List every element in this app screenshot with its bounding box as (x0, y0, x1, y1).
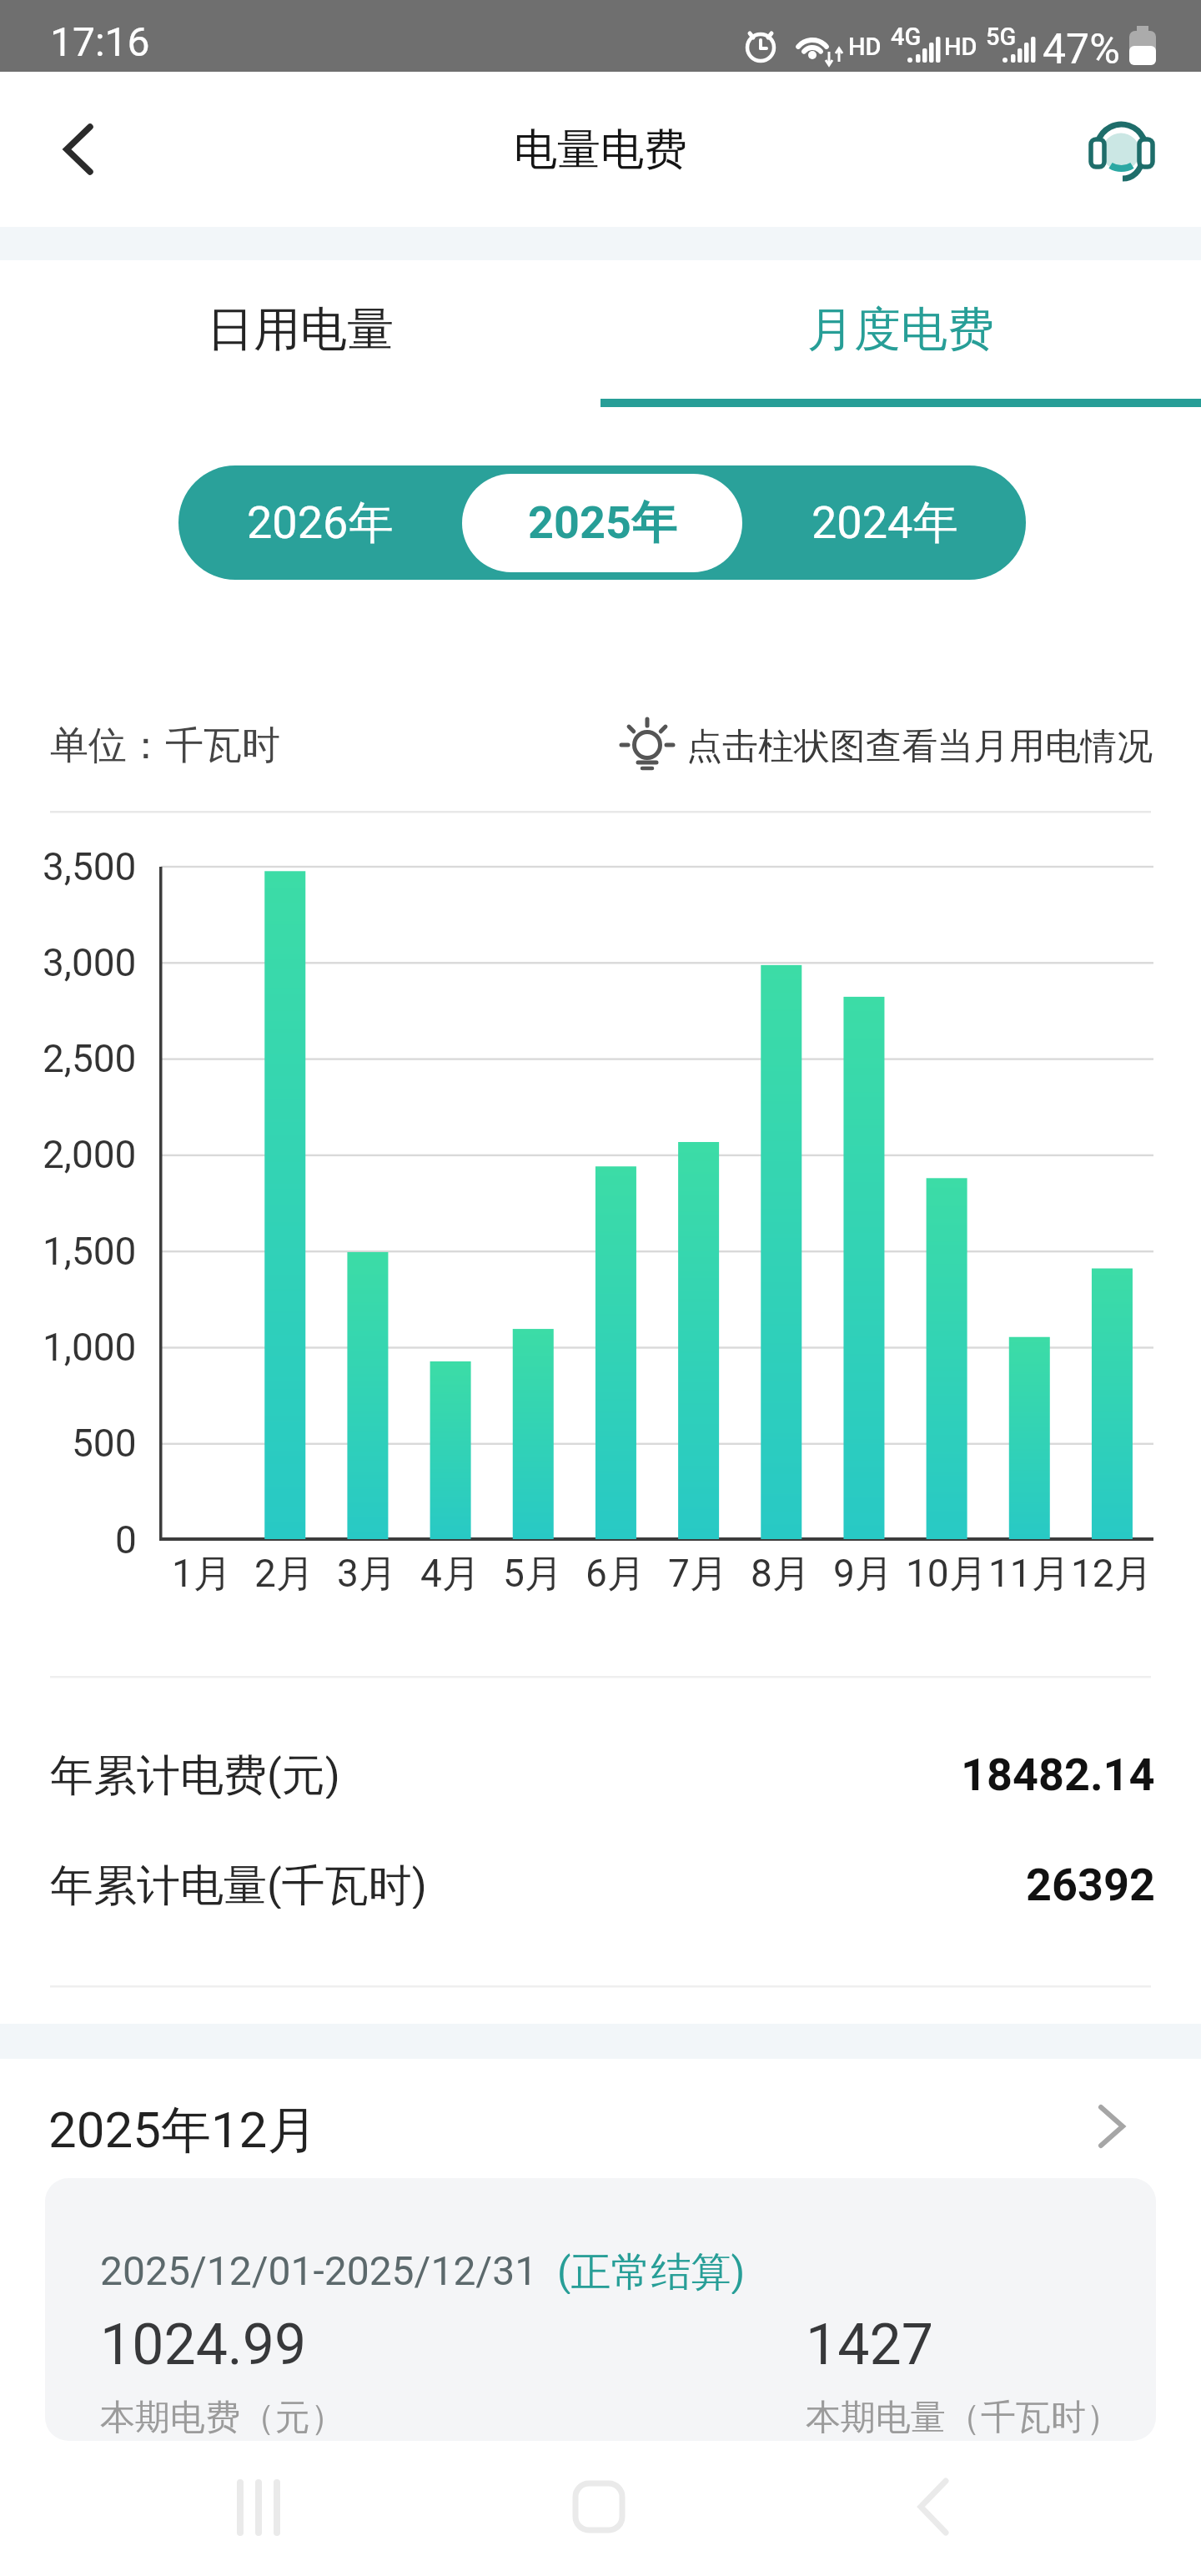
staticText: 2025/12/01-2025/12/31 (100, 2247, 538, 2294)
staticText: 年累计电量(千瓦时) (50, 1859, 427, 1909)
staticText: (正常结算) (557, 2247, 746, 2294)
staticText: 9月 (833, 1550, 893, 1597)
button[interactable] (1080, 108, 1163, 192)
staticText: 1,500 (43, 1229, 137, 1274)
staticText: 本期电量（千瓦时） (806, 2396, 1121, 2440)
staticText: 日用电量 (207, 300, 394, 360)
button[interactable] (467, 2444, 734, 2576)
staticText: 2月 (254, 1550, 314, 1597)
button[interactable] (45, 2178, 1156, 2441)
staticText: 26392 (1026, 1859, 1155, 1909)
staticText: 年累计电费(元) (50, 1748, 340, 1799)
staticText: 1,000 (43, 1325, 137, 1370)
staticText: 2025年12月 (48, 2099, 318, 2157)
button[interactable]: 日用电量 (0, 260, 600, 399)
staticText: 12月 (1071, 1550, 1153, 1597)
staticText: 5G (986, 23, 1017, 51)
staticText: 18482.14 (961, 1748, 1155, 1799)
staticText: 4月 (420, 1550, 480, 1597)
staticText: 2026年 (247, 495, 394, 551)
button[interactable]: 2024年 (743, 465, 1026, 580)
button[interactable] (462, 474, 742, 572)
staticText: 1月 (172, 1550, 232, 1597)
staticText: 500 (72, 1421, 137, 1466)
staticText: 1427 (806, 2312, 933, 2372)
staticText: 3月 (337, 1550, 397, 1597)
staticText: 0 (115, 1517, 137, 1562)
staticText: 8月 (751, 1550, 811, 1597)
staticText: 2024年 (812, 495, 958, 551)
staticText: 5月 (503, 1550, 563, 1597)
staticText: 1024.99 (100, 2312, 307, 2372)
button[interactable] (133, 2444, 400, 2576)
button[interactable]: 2026年 (178, 465, 461, 580)
staticText: 2025年 (528, 495, 676, 551)
staticText: 4G (891, 23, 922, 51)
staticText: 10月 (906, 1550, 987, 1597)
staticText: 3,000 (43, 940, 137, 985)
staticText: 月度电费 (807, 300, 994, 360)
staticText: 6月 (585, 1550, 646, 1597)
staticText: 点击柱状图查看当月用电情况 (686, 724, 1153, 767)
staticText: 电量电费 (514, 123, 687, 178)
staticText: 2,000 (43, 1132, 137, 1177)
staticText: 17:16 (50, 18, 150, 65)
staticText: 单位：千瓦时 (50, 722, 280, 770)
staticText: HD (944, 33, 977, 61)
staticText: 3,500 (43, 844, 137, 889)
staticText: 47% (1043, 25, 1120, 68)
staticText: 7月 (668, 1550, 728, 1597)
staticText: 本期电费（元） (100, 2396, 345, 2440)
button[interactable] (47, 110, 127, 190)
button[interactable] (0, 2077, 1201, 2177)
button[interactable]: 月度电费 (600, 260, 1201, 399)
staticText: 11月 (988, 1550, 1070, 1597)
staticText: HD (848, 33, 882, 61)
staticText: 2,500 (43, 1036, 137, 1081)
